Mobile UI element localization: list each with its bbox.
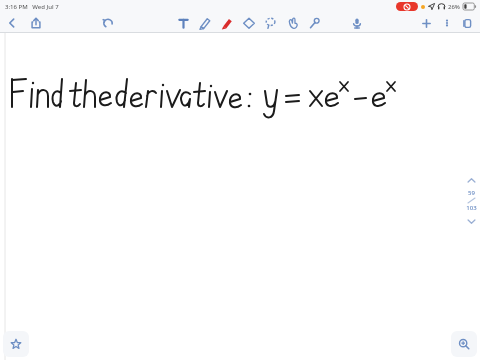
button[interactable]: Shape tool — [283, 13, 303, 33]
staticText: 103 — [466, 204, 477, 212]
button[interactable]: Next page — [464, 214, 478, 228]
button[interactable]: Text tool — [174, 13, 193, 33]
button[interactable]: Microphone — [347, 13, 367, 33]
button[interactable]: Lasso select — [261, 13, 281, 33]
staticText: 26% — [448, 3, 460, 11]
button[interactable]: Add page — [417, 13, 436, 33]
button[interactable]: Eraser — [239, 13, 259, 33]
button[interactable]: Pages — [458, 13, 477, 33]
button[interactable]: Pen — [195, 13, 215, 33]
button[interactable]: More options — [439, 13, 455, 33]
staticText: 3:16 PM Wed Jul 7 — [5, 3, 59, 11]
button[interactable]: 59 — [466, 189, 477, 212]
button[interactable]: Undo — [98, 13, 118, 33]
button[interactable]: Bookmark — [3, 331, 29, 357]
button[interactable]: Previous page — [464, 173, 478, 187]
staticText: 59 — [468, 189, 475, 197]
button[interactable]: Zoom in — [451, 331, 477, 357]
button[interactable]: Highlighter — [217, 13, 237, 33]
button[interactable]: Back — [2, 13, 22, 33]
button[interactable]: Laser pointer — [305, 13, 325, 33]
button[interactable]: Share — [26, 13, 46, 33]
